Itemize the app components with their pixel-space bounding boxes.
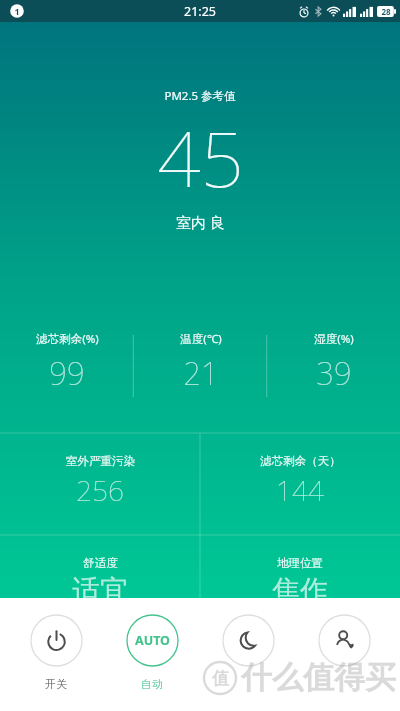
staticText: 室外严重污染 (66, 454, 135, 468)
staticText: AUTO (135, 632, 170, 649)
staticText: 39 (316, 352, 352, 394)
staticText: 1 (14, 5, 20, 17)
staticText: 地理位置 (277, 556, 323, 570)
button[interactable]: 温度(℃) (134, 327, 267, 407)
staticText: 21:25 (184, 3, 216, 20)
staticText: 焦作 (272, 573, 328, 598)
staticText: 28 (381, 6, 391, 17)
staticText: 湿度(%) (314, 331, 354, 347)
staticText: 什么值得买 (241, 658, 396, 697)
button[interactable]: 滤芯剩余（天） (200, 433, 400, 535)
button[interactable]: 湿度(%) (267, 327, 400, 407)
button[interactable]: 舒适度 (0, 535, 200, 598)
staticText: 滤芯剩余（天） (260, 454, 341, 468)
staticText: 适宜 (72, 573, 128, 598)
staticText: 室内 良 (176, 212, 225, 232)
button[interactable]: Auto mode (112, 614, 192, 691)
staticText: 21 (183, 352, 219, 394)
staticText: 99 (49, 352, 85, 394)
button[interactable]: 地理位置 (200, 535, 400, 598)
staticText: 滤芯剩余(%) (36, 331, 99, 347)
button[interactable]: Favourite profile (304, 614, 384, 677)
staticText: 自动 (141, 677, 163, 691)
button[interactable]: 室外严重污染 (0, 433, 200, 535)
staticText: 45 (157, 106, 244, 210)
staticText: 舒适度 (83, 556, 118, 570)
staticText: 温度(℃) (180, 331, 222, 347)
button[interactable]: 滤芯剩余(%) (0, 327, 134, 407)
staticText: PM2.5 参考值 (164, 88, 236, 104)
staticText: 值 (212, 668, 229, 689)
staticText: 144 (276, 471, 324, 509)
button[interactable]: Night mode (208, 614, 288, 677)
staticText: 开关 (45, 677, 67, 691)
staticText: 256 (76, 471, 124, 509)
button[interactable]: Power (16, 614, 96, 691)
